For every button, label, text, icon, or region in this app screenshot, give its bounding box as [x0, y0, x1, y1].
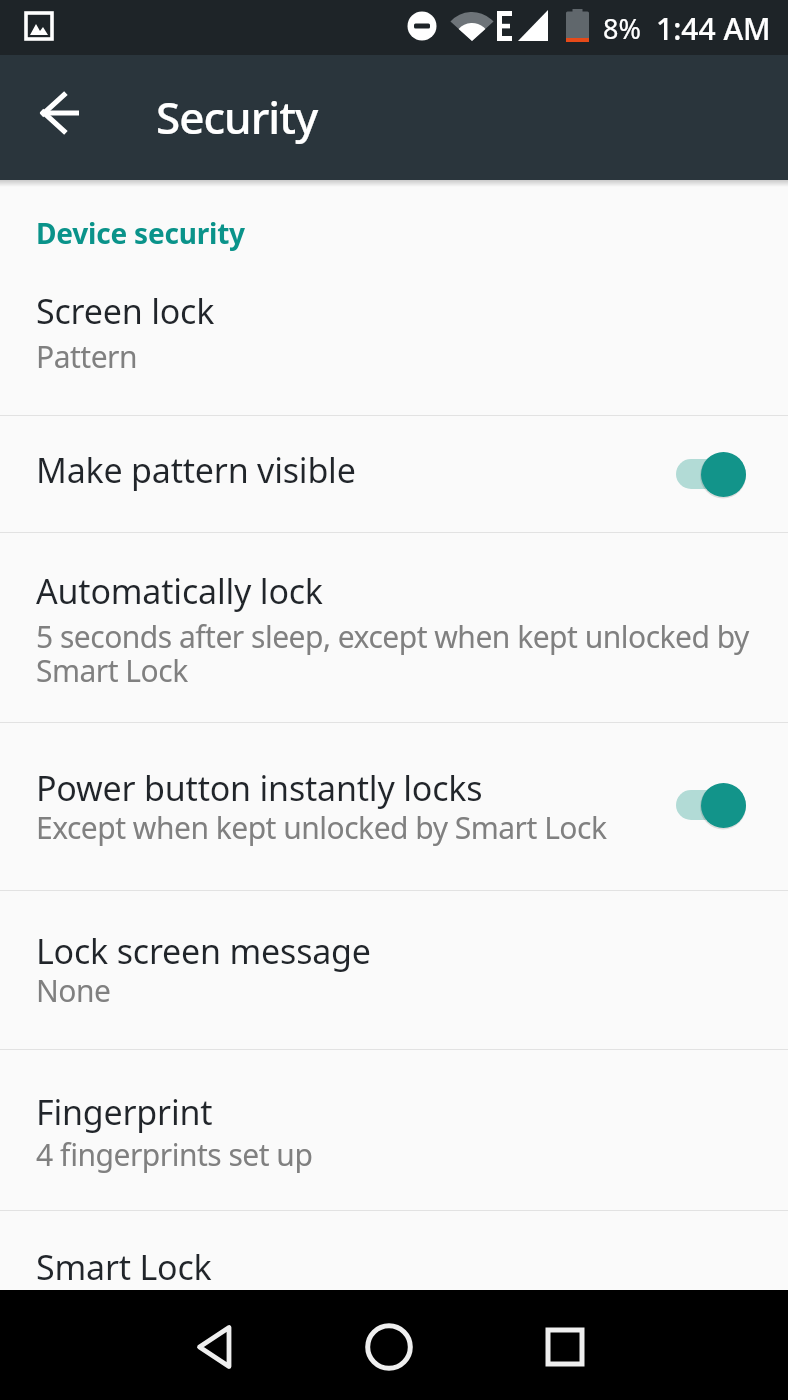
staticText: Power button instantly locks [36, 765, 483, 811]
staticText: Fingerprint [36, 1089, 213, 1135]
staticText: Pattern [36, 336, 137, 377]
button[interactable] [21, 73, 101, 153]
staticText: Smart Lock [36, 1244, 212, 1290]
button[interactable]: Smart Lock [0, 1211, 788, 1290]
button[interactable] [344, 1302, 434, 1392]
staticText: Lock screen message [36, 928, 371, 974]
button[interactable]: Fingerprint [0, 1050, 788, 1210]
button[interactable]: Power button instantly locks [0, 723, 788, 890]
button[interactable]: Automatically lock [0, 533, 788, 722]
button[interactable]: Lock screen message [0, 891, 788, 1049]
staticText: 5 seconds after sleep, except when kept … [36, 616, 749, 690]
button[interactable]: Screen lock [0, 260, 788, 415]
staticText: Device security [36, 214, 245, 252]
staticText: Make pattern visible [36, 447, 356, 493]
staticText: 1:44 AM [656, 8, 771, 49]
button[interactable]: Make pattern visible [0, 416, 788, 532]
staticText: Screen lock [36, 288, 215, 334]
staticText: 8% [603, 10, 641, 47]
staticText: Automatically lock [36, 568, 323, 614]
staticText: 4 fingerprints set up [36, 1134, 313, 1175]
button[interactable] [676, 782, 746, 828]
staticText: Except when kept unlocked by Smart Lock [36, 807, 607, 848]
staticText: Security [156, 87, 318, 147]
button[interactable] [169, 1302, 259, 1392]
button[interactable] [520, 1302, 610, 1392]
button[interactable] [676, 451, 746, 497]
staticText: None [36, 970, 111, 1011]
